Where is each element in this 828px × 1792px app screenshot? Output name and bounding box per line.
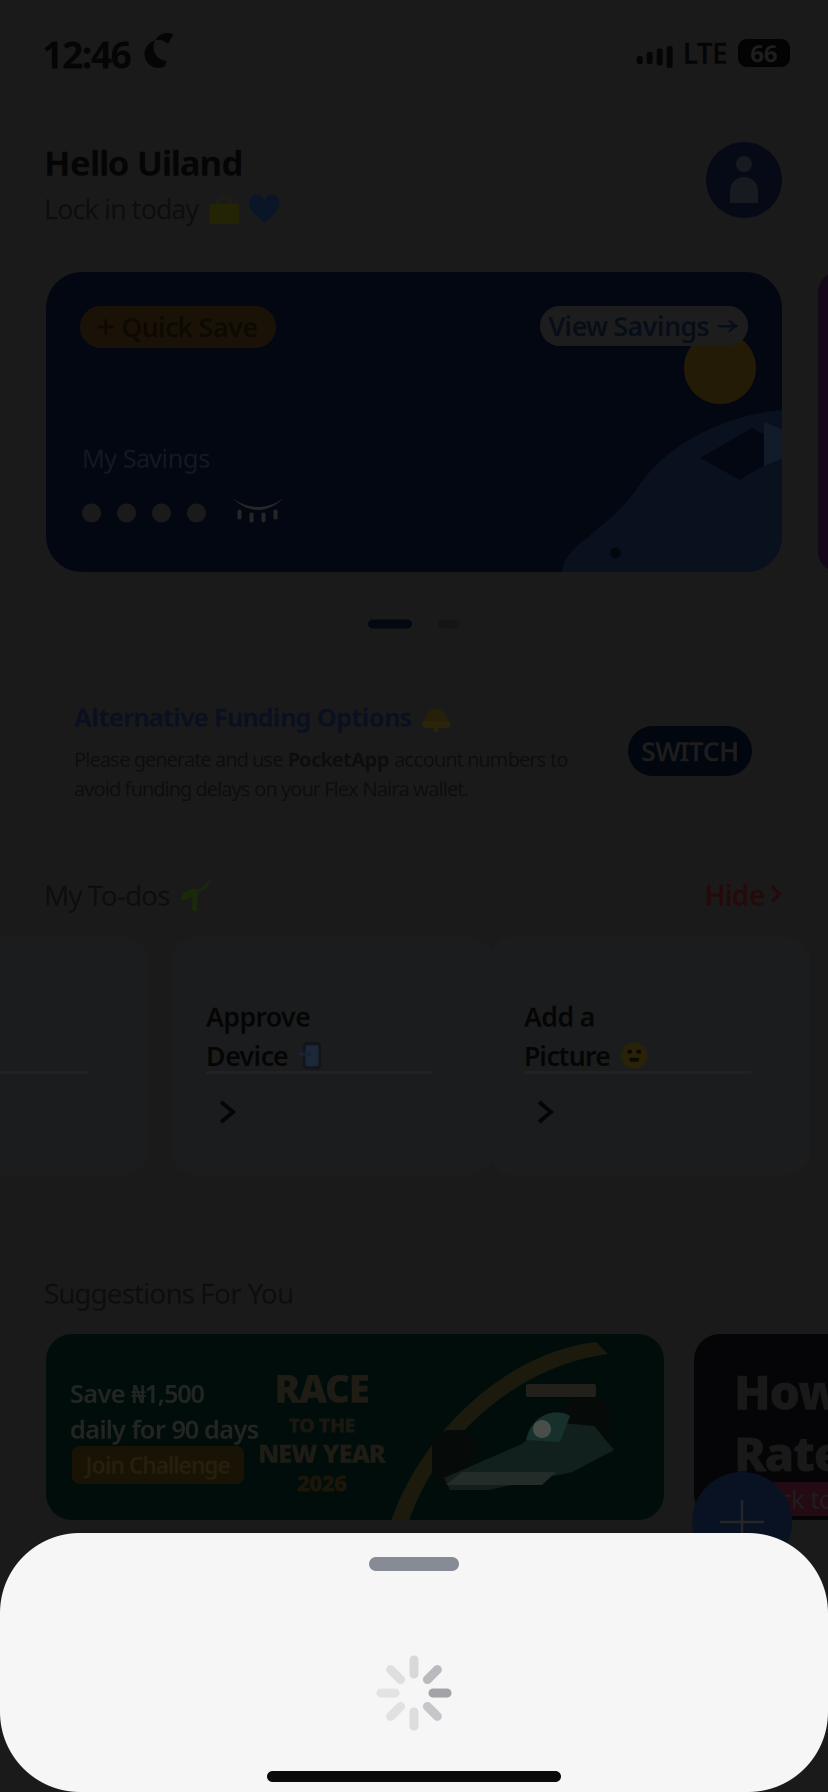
staticText: LTE (683, 34, 728, 72)
button[interactable]: View Savings (540, 306, 748, 346)
staticText: Suggestions For You (44, 1274, 294, 1312)
staticText: Save ₦1,500 (70, 1376, 204, 1410)
staticText: account numbers to (390, 746, 568, 772)
staticText: 12:46 (42, 29, 131, 79)
staticText: Hide (704, 876, 765, 914)
button[interactable]: Profile (706, 142, 782, 218)
staticText: My Savings (82, 441, 210, 475)
staticText: Lock in today (44, 191, 199, 227)
staticText: daily for 90 days (70, 1412, 259, 1446)
staticText: Rates (734, 1421, 828, 1485)
staticText: Please generate and use (74, 746, 288, 772)
staticText: How (734, 1359, 828, 1423)
staticText: SWITCH (641, 733, 739, 769)
staticText: Quick Save (122, 309, 258, 345)
button[interactable]: Save ₦1,500 (46, 1334, 664, 1520)
staticText: avoid funding delays on your Flex Naira … (74, 775, 468, 802)
button[interactable]: Quick Save (80, 306, 276, 348)
staticText: Device (206, 1038, 289, 1073)
staticText: PocketApp (288, 746, 390, 772)
staticText: TO THE (288, 1411, 355, 1438)
staticText: 66 (750, 37, 778, 69)
staticText: Approve (206, 999, 311, 1034)
button[interactable]: New (692, 1472, 792, 1572)
staticText: Alternative Funding Options (74, 700, 412, 734)
staticText: NEW YEAR (258, 1436, 386, 1470)
button[interactable]: SWITCH (628, 726, 752, 776)
staticText: Picture (524, 1038, 611, 1073)
staticText: Hello Uiland (44, 139, 244, 185)
staticText: Join Challenge (85, 1450, 231, 1480)
button[interactable]: Hide (640, 876, 784, 914)
staticText: Add a (524, 999, 596, 1034)
staticText: My To-dos (44, 876, 170, 914)
button[interactable]: How (694, 1334, 828, 1520)
staticText: RACE (274, 1362, 370, 1413)
staticText: View Savings (548, 308, 710, 344)
staticText: 2026 (297, 1468, 347, 1498)
button[interactable]: Approve (172, 937, 492, 1175)
button[interactable]: Add a (490, 937, 810, 1175)
staticText: Click to watch (752, 1482, 828, 1516)
